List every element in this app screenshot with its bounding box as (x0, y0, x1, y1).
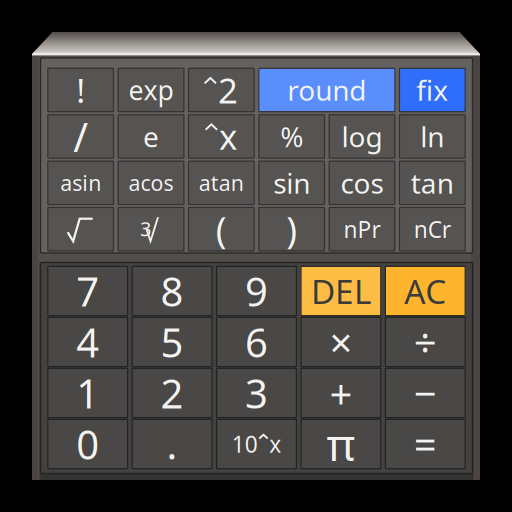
button[interactable]: factorial (47, 68, 114, 112)
staticText: ( (216, 205, 227, 253)
staticText: log (341, 118, 382, 155)
staticText: DEL (311, 269, 371, 313)
button[interactable]: pi (301, 419, 381, 469)
button[interactable]: 0 (47, 419, 128, 469)
button[interactable]: 6 (216, 317, 297, 367)
staticText: nPr (343, 214, 380, 244)
staticText: − (414, 366, 437, 419)
staticText: e (143, 118, 159, 155)
staticText: x (219, 113, 237, 159)
staticText: / (73, 110, 88, 163)
button[interactable]: exp (118, 68, 184, 112)
button[interactable]: multiply (301, 317, 381, 367)
staticText: 5 (161, 315, 184, 368)
staticText: . (167, 417, 178, 470)
staticText: AC (404, 269, 446, 313)
button[interactable]: 7 (47, 266, 128, 316)
staticText: ln (420, 118, 444, 155)
button[interactable]: open paren (188, 207, 254, 251)
button[interactable]: 4 (47, 317, 128, 367)
button[interactable]: e (118, 114, 184, 158)
button[interactable]: equals (385, 419, 465, 469)
button[interactable]: asin (47, 161, 114, 205)
staticText: 0 (76, 417, 99, 470)
button[interactable]: 3 (216, 368, 297, 418)
button[interactable]: all clear (385, 266, 465, 316)
button[interactable]: squared (188, 68, 254, 112)
button[interactable]: decimal point (132, 419, 212, 469)
button[interactable]: cos (329, 161, 395, 205)
button[interactable]: acos (118, 161, 184, 205)
staticText: cos (340, 164, 383, 201)
button[interactable]: minus (385, 368, 465, 418)
staticText: 2 (161, 366, 184, 419)
staticText: 3 (140, 215, 151, 242)
staticText: 7 (76, 264, 99, 317)
button[interactable]: log (329, 114, 395, 158)
button[interactable]: 2 (132, 368, 212, 418)
staticText: tan (411, 164, 454, 201)
staticText: π (326, 415, 355, 473)
button[interactable]: power (188, 114, 254, 158)
staticText: asin (60, 169, 101, 197)
button[interactable]: nPr (329, 207, 395, 251)
button[interactable]: sin (258, 161, 325, 205)
button[interactable]: 1 (47, 368, 128, 418)
staticText: + (329, 366, 352, 419)
staticText: × (329, 315, 352, 368)
button[interactable]: tan (399, 161, 465, 205)
button[interactable]: 5 (132, 317, 212, 367)
button[interactable]: ln (399, 114, 465, 158)
button[interactable]: ten to the x (216, 419, 297, 469)
button[interactable]: close paren (258, 207, 325, 251)
button[interactable]: percent (258, 114, 325, 158)
staticText: 10 (232, 429, 258, 459)
staticText: 8 (161, 264, 184, 317)
button[interactable]: delete (301, 266, 381, 316)
staticText: ÷ (414, 315, 437, 368)
staticText: nCr (414, 214, 451, 244)
button[interactable]: cube root (118, 207, 184, 251)
staticText: % (280, 118, 303, 155)
button[interactable]: 9 (216, 266, 297, 316)
button[interactable]: round (258, 68, 395, 112)
staticText: sin (273, 164, 310, 201)
staticText: = (414, 417, 437, 470)
staticText: 6 (245, 315, 268, 368)
staticText: atan (199, 169, 244, 197)
staticText: fix (416, 71, 448, 109)
staticText: round (287, 71, 366, 109)
button[interactable]: atan (188, 161, 254, 205)
button[interactable]: nCr (399, 207, 465, 251)
staticText: ) (286, 205, 297, 253)
button[interactable]: divide (385, 317, 465, 367)
button[interactable]: plus (301, 368, 381, 418)
button[interactable]: fix (399, 68, 465, 112)
staticText: 9 (245, 264, 268, 317)
button[interactable]: square root (47, 207, 114, 251)
staticText: acos (128, 169, 173, 197)
staticText: ! (76, 68, 85, 112)
staticText: x (269, 429, 281, 459)
staticText: 1 (76, 366, 99, 419)
staticText: 2 (218, 67, 238, 113)
button[interactable]: 8 (132, 266, 212, 316)
staticText: 3 (245, 366, 268, 419)
button[interactable]: divide (47, 114, 114, 158)
staticText: exp (128, 72, 173, 108)
staticText: 4 (76, 315, 99, 368)
